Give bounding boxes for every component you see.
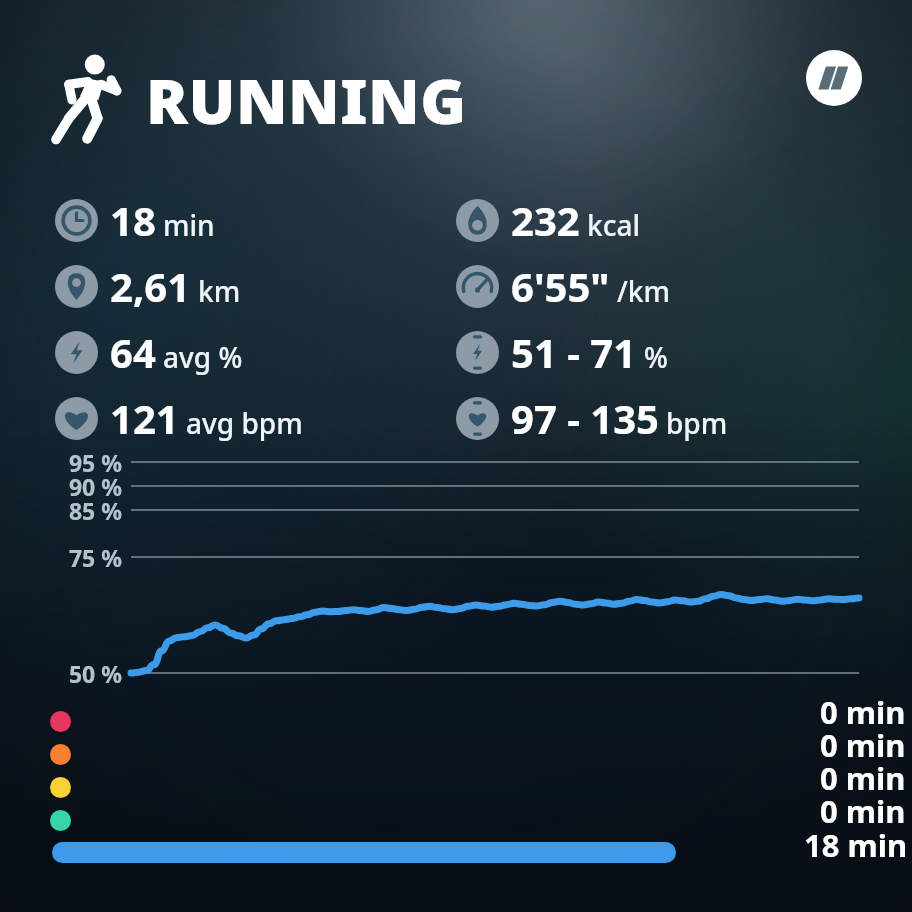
staticText: min [163, 206, 215, 244]
staticText: % [644, 338, 668, 376]
staticText: 232 [511, 193, 580, 247]
staticText: km [198, 272, 241, 310]
staticText: kcal [587, 206, 640, 244]
button[interactable]: 0 min [50, 700, 912, 742]
staticText: 0 min [820, 691, 906, 733]
button[interactable]: App logo [806, 50, 862, 106]
staticText: /km [617, 272, 670, 310]
button[interactable]: 18 [55, 193, 215, 247]
button[interactable]: RUNNING [48, 54, 467, 146]
button[interactable]: 0 min [50, 733, 912, 775]
button[interactable]: 6'55" [456, 259, 670, 313]
staticText: 18 [110, 193, 156, 247]
staticText: 2,61 [110, 259, 191, 313]
staticText: 121 [110, 391, 179, 445]
staticText: 50 % [44, 658, 122, 689]
staticText: 6'55" [511, 259, 610, 313]
staticText: 0 min [820, 724, 906, 766]
staticText: RUNNING [146, 58, 467, 142]
button[interactable]: 97 - 135 [456, 391, 728, 445]
button[interactable]: 0 min [50, 799, 912, 841]
staticText: avg bpm [186, 404, 303, 442]
button[interactable]: 51 - 71 [456, 325, 668, 379]
staticText: 0 min [820, 790, 906, 832]
staticText: avg % [163, 338, 243, 376]
staticText: 95 % [44, 447, 122, 478]
button[interactable]: 121 [55, 391, 303, 445]
staticText: 75 % [44, 542, 122, 573]
staticText: 90 % [44, 471, 122, 502]
staticText: 0 min [820, 757, 906, 799]
staticText: 97 - 135 [511, 391, 659, 445]
button[interactable]: 0 min [50, 766, 912, 808]
staticText: 18 min [804, 824, 908, 866]
staticText: bpm [666, 404, 728, 442]
button[interactable]: 232 [456, 193, 640, 247]
staticText: 85 % [44, 495, 122, 526]
button[interactable]: 18 min [52, 831, 912, 873]
staticText: 64 [110, 325, 156, 379]
staticText: 51 - 71 [511, 325, 637, 379]
button[interactable]: 64 [55, 325, 243, 379]
button[interactable]: 2,61 [55, 259, 241, 313]
